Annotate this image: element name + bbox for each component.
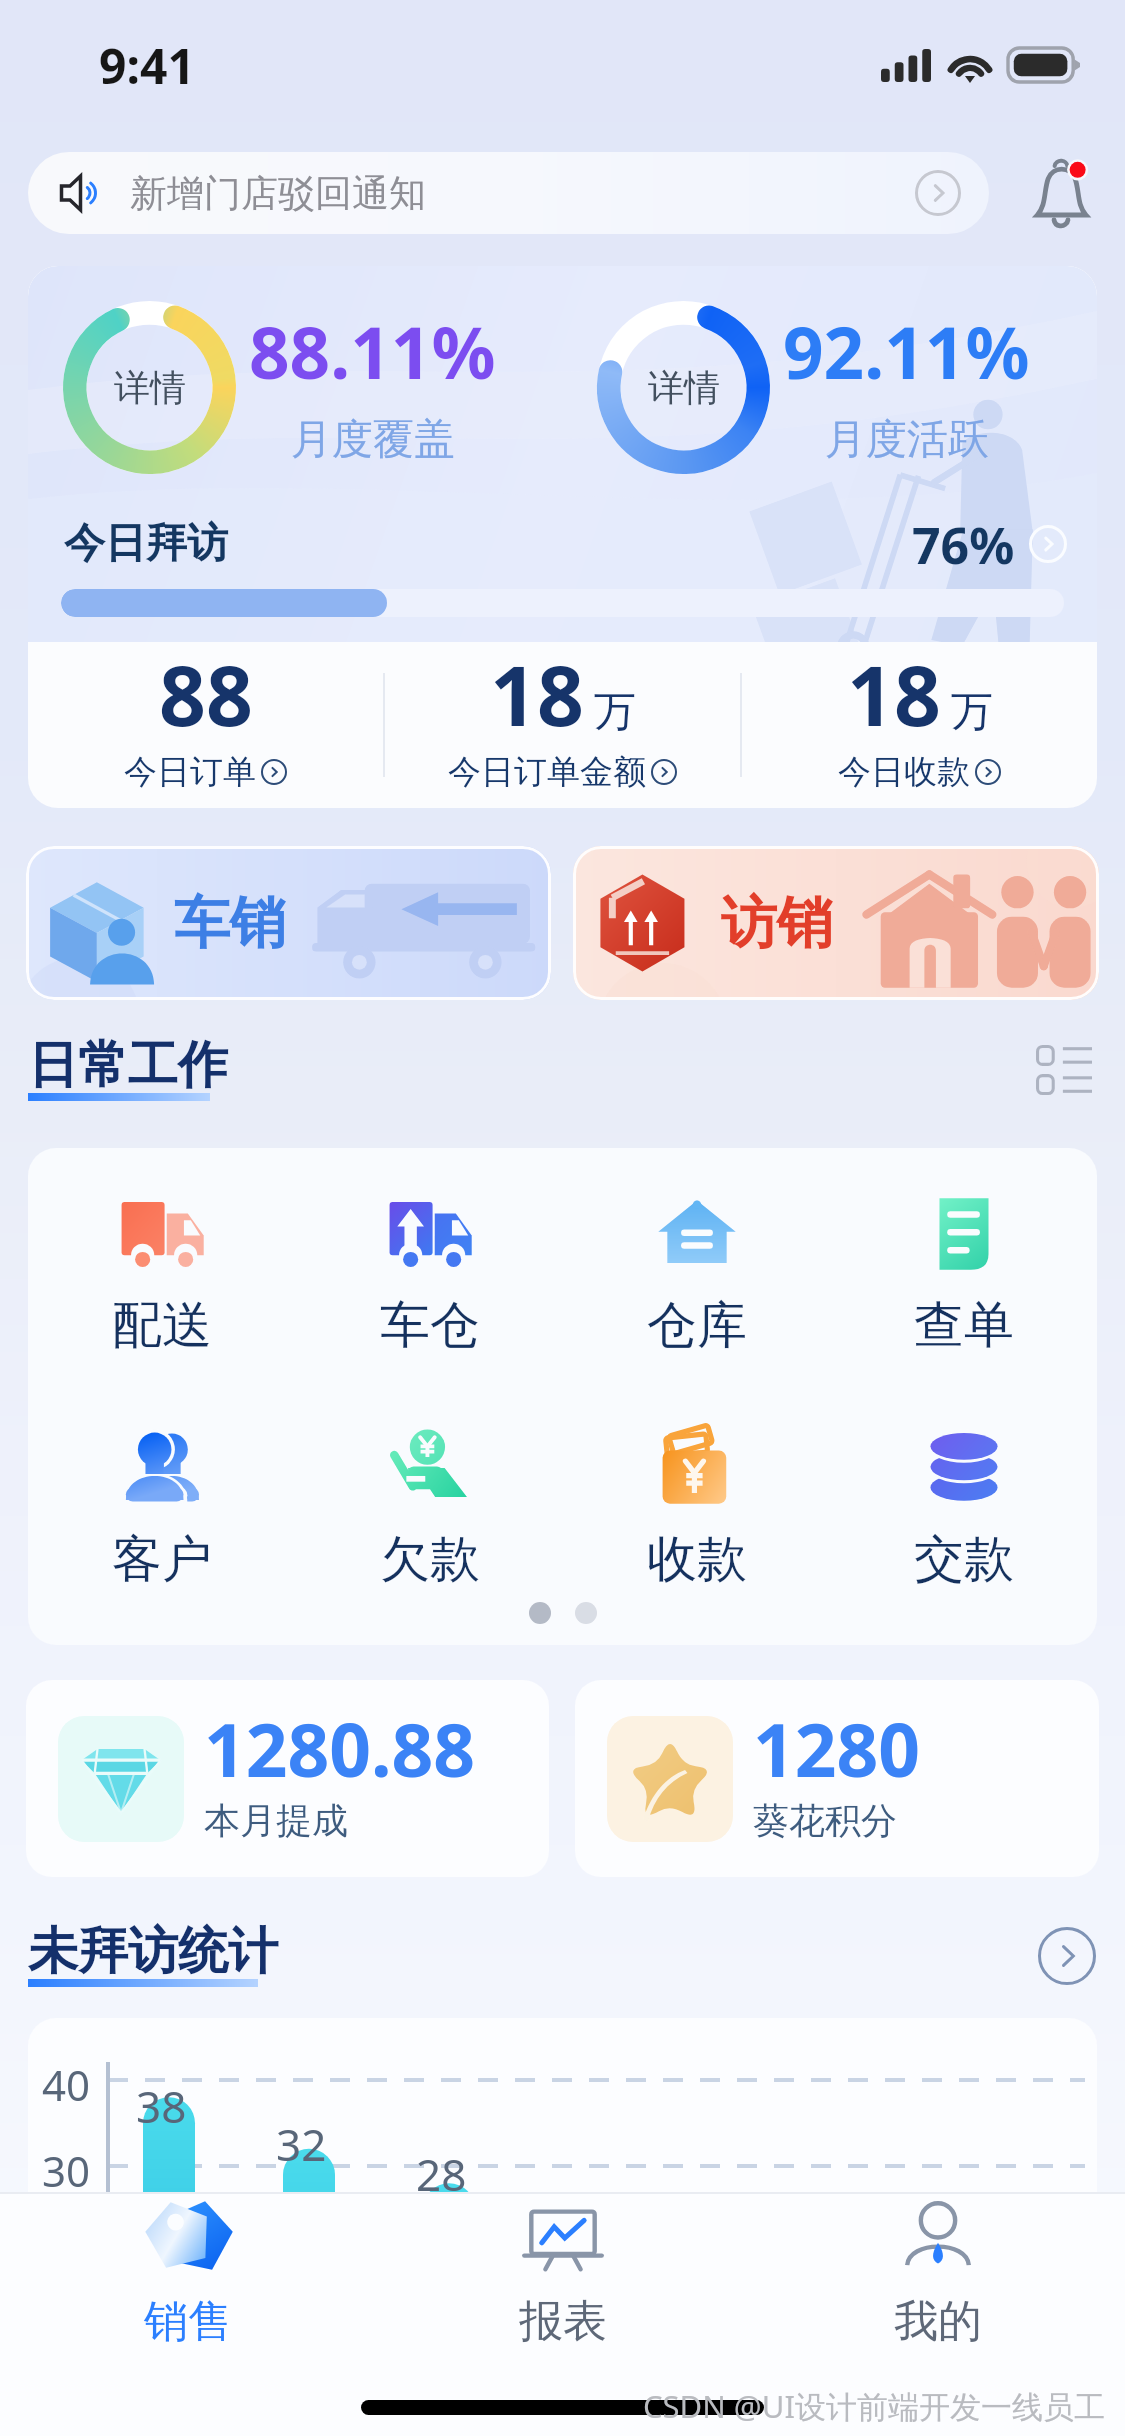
staticText: 配送 bbox=[112, 1294, 212, 1357]
staticText: 交款 bbox=[914, 1528, 1014, 1591]
staticText: 欠款 bbox=[380, 1528, 480, 1591]
button[interactable]: 车销 bbox=[26, 846, 551, 1000]
staticText: 万 bbox=[951, 686, 993, 739]
staticText: 今日订单金额 bbox=[448, 751, 646, 793]
button[interactable]: 查单 bbox=[830, 1196, 1097, 1357]
button[interactable]: 详情 bbox=[596, 300, 771, 475]
button[interactable]: 18 bbox=[385, 648, 740, 803]
staticText: 1280.88 bbox=[204, 1699, 476, 1798]
staticText: CSDN @UI设计前端开发一线员工 bbox=[643, 2385, 1105, 2427]
staticText: 92.11% bbox=[783, 303, 1030, 400]
button[interactable]: Switch layout bbox=[1029, 1035, 1099, 1105]
staticText: 报表 bbox=[519, 2294, 607, 2349]
staticText: 月度活跃 bbox=[825, 414, 989, 466]
staticText: 38 bbox=[136, 2076, 187, 2136]
staticText: 76% bbox=[912, 511, 1015, 577]
button[interactable]: 1280.88 bbox=[26, 1680, 549, 1877]
button[interactable]: 详情 bbox=[62, 300, 237, 475]
staticText: 新增门店驳回通知 bbox=[130, 170, 915, 217]
staticText: 车仓 bbox=[380, 1294, 480, 1357]
button[interactable]: More details bbox=[1035, 1924, 1099, 1988]
staticText: 未拜访统计 bbox=[28, 1920, 278, 1983]
staticText: 详情 bbox=[648, 365, 720, 410]
staticText: 客户 bbox=[112, 1528, 212, 1591]
staticText: 葵花积分 bbox=[753, 1798, 897, 1843]
staticText: 今日拜访 bbox=[64, 518, 228, 570]
staticText: 今日收款 bbox=[838, 751, 970, 793]
staticText: 88.11% bbox=[249, 303, 496, 400]
staticText: 本月提成 bbox=[204, 1798, 348, 1843]
staticText: 18 bbox=[847, 638, 941, 750]
button[interactable]: Notifications bbox=[1021, 154, 1100, 233]
staticText: 9:41 bbox=[99, 33, 195, 98]
staticText: 详情 bbox=[114, 365, 186, 410]
staticText: 查单 bbox=[914, 1294, 1014, 1357]
staticText: 88 bbox=[159, 638, 253, 750]
staticText: 18 bbox=[490, 638, 584, 750]
staticText: 仓库 bbox=[647, 1294, 747, 1357]
staticText: 收款 bbox=[647, 1528, 747, 1591]
staticText: 30 bbox=[42, 2142, 91, 2199]
button[interactable]: 仓库 bbox=[563, 1196, 830, 1357]
button[interactable]: 新增门店驳回通知 bbox=[28, 152, 989, 234]
button[interactable]: 配送 bbox=[28, 1196, 296, 1357]
staticText: 32 bbox=[276, 2114, 327, 2174]
staticText: 销售 bbox=[144, 2294, 232, 2349]
button[interactable]: 我的 bbox=[750, 2194, 1125, 2352]
button[interactable]: 收款 bbox=[563, 1430, 830, 1591]
staticText: 我的 bbox=[894, 2294, 982, 2349]
staticText: 22 bbox=[556, 2186, 607, 2246]
button[interactable]: 访销 bbox=[573, 846, 1099, 1000]
button[interactable]: 18 bbox=[742, 648, 1097, 803]
button[interactable]: 欠款 bbox=[296, 1430, 563, 1591]
button[interactable]: 交款 bbox=[830, 1430, 1097, 1591]
button[interactable]: 销售 bbox=[0, 2194, 375, 2352]
staticText: 月度覆盖 bbox=[291, 414, 455, 466]
staticText: 40 bbox=[42, 2056, 91, 2113]
staticText: 日常工作 bbox=[28, 1034, 228, 1097]
staticText: 车销 bbox=[174, 888, 286, 959]
button[interactable]: 客户 bbox=[28, 1430, 296, 1591]
staticText: 万 bbox=[594, 686, 636, 739]
button[interactable]: 车仓 bbox=[296, 1196, 563, 1357]
staticText: 访销 bbox=[721, 888, 833, 959]
button[interactable]: 88 bbox=[28, 648, 383, 803]
staticText: 28 bbox=[416, 2144, 467, 2204]
staticText: 1280 bbox=[753, 1699, 921, 1798]
button[interactable]: 报表 bbox=[375, 2194, 750, 2352]
button[interactable]: 1280 bbox=[575, 1680, 1099, 1877]
staticText: 今日订单 bbox=[124, 751, 256, 793]
